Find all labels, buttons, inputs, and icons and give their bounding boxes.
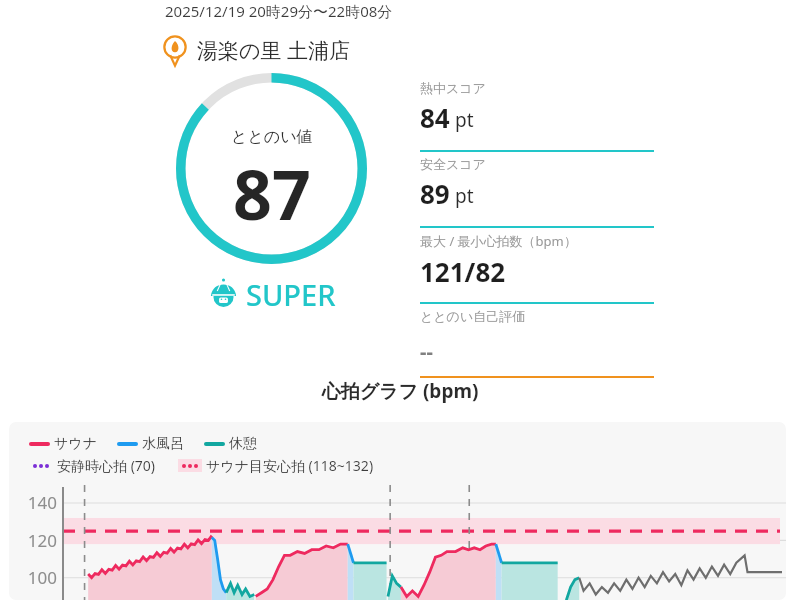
- staticText: 最大 / 最小心拍数（bpm）: [420, 232, 577, 250]
- staticText: 87: [233, 147, 311, 240]
- staticText: 140: [12, 491, 57, 514]
- staticText: 安全スコア: [420, 156, 486, 172]
- staticText: pt: [455, 183, 474, 209]
- staticText: 84: [420, 100, 450, 135]
- button[interactable]: 熱中スコア: [420, 76, 654, 152]
- button[interactable]: 安静時心拍 (70): [29, 456, 156, 475]
- staticText: 2025/12/19 20時29分〜22時08分: [165, 1, 800, 21]
- staticText: 安静時心拍 (70): [57, 456, 156, 475]
- button[interactable]: 休憩: [204, 435, 257, 453]
- staticText: 121/82: [420, 254, 506, 289]
- staticText: 89: [420, 176, 450, 211]
- staticText: ととのい自己評価: [420, 308, 526, 324]
- staticText: SUPER: [246, 275, 336, 314]
- staticText: 熱中スコア: [420, 80, 486, 96]
- button[interactable]: 最大 / 最小心拍数（bpm）: [420, 228, 654, 304]
- staticText: 120: [12, 529, 57, 552]
- button[interactable]: 安全スコア: [420, 152, 654, 228]
- staticText: 湯楽の里 土浦店: [197, 36, 350, 65]
- other: Sauna venue: [160, 35, 190, 65]
- button[interactable]: サウナ目安心拍 (118~132): [178, 456, 374, 475]
- button[interactable]: Super rating: [176, 271, 367, 317]
- button[interactable]: ととのい自己評価: [420, 304, 654, 378]
- staticText: --: [420, 338, 433, 365]
- staticText: 休憩: [229, 435, 257, 453]
- other: Super rating: [208, 279, 239, 310]
- staticText: 水風呂: [142, 435, 184, 453]
- button[interactable]: Sauna venue: [160, 35, 350, 65]
- button[interactable]: サウナ: [29, 435, 97, 453]
- staticText: pt: [455, 107, 474, 133]
- staticText: ととのい値: [231, 127, 313, 147]
- staticText: サウナ: [54, 435, 97, 453]
- staticText: 100: [12, 566, 57, 589]
- staticText: 心拍グラフ (bpm): [0, 378, 800, 404]
- button[interactable]: 水風呂: [117, 435, 184, 453]
- staticText: サウナ目安心拍 (118~132): [206, 456, 374, 475]
